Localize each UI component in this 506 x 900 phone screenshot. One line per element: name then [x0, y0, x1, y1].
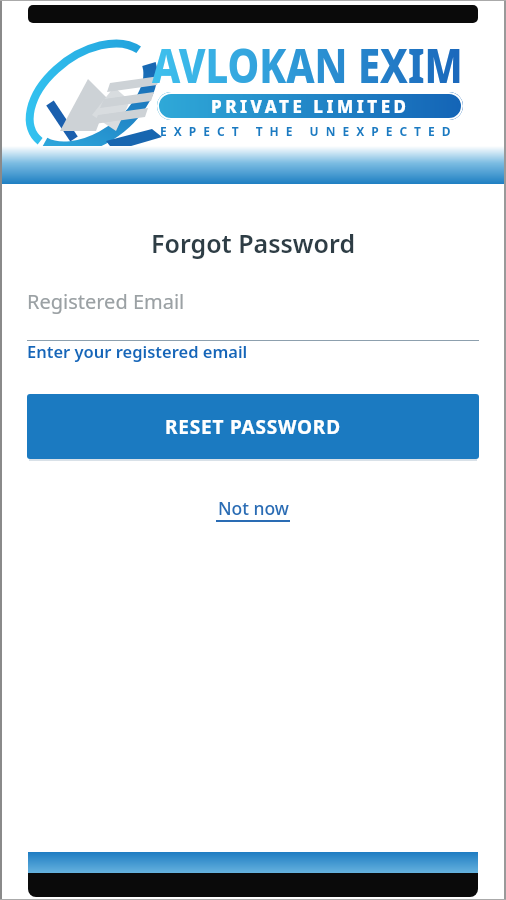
staticText: Enter your registered email: [27, 340, 248, 362]
staticText: Registered Email: [27, 288, 185, 315]
staticText: PRIVATE LIMITED: [211, 95, 410, 118]
button[interactable]: RESET PASSWORD: [27, 394, 479, 459]
staticText: AVLOKAN EXIM: [152, 30, 463, 96]
staticText: Forgot Password: [151, 226, 356, 260]
staticText: EXPECT THE UNEXPECTED: [160, 123, 458, 139]
button[interactable]: Not now: [216, 496, 290, 522]
staticText: Not now: [218, 496, 289, 520]
button[interactable]: Registered Email: [27, 288, 479, 341]
staticText: RESET PASSWORD: [165, 414, 341, 440]
